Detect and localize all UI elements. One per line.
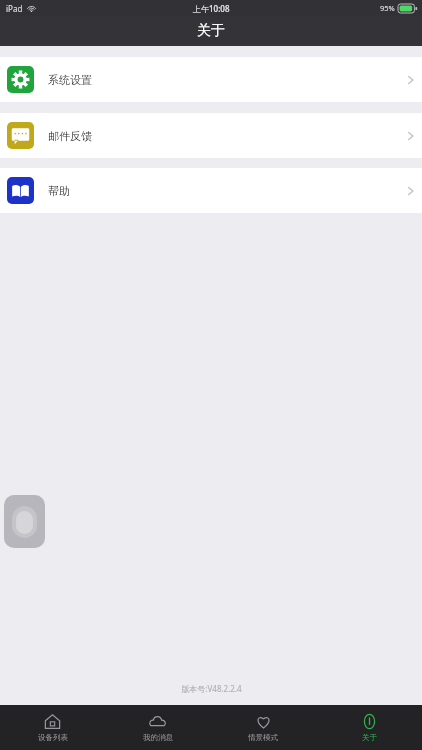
staticText: 关于 xyxy=(362,733,377,742)
button[interactable]: 邮件反馈 xyxy=(0,113,422,158)
staticText: 帮助 xyxy=(48,184,70,198)
staticText: 上午10:08 xyxy=(193,3,230,14)
staticText: 系统设置 xyxy=(48,73,92,87)
button[interactable]: Assistive touch xyxy=(4,495,45,548)
staticText: 我的消息 xyxy=(143,733,173,742)
staticText: 关于 xyxy=(197,22,225,40)
staticText: 设备列表 xyxy=(38,733,68,742)
staticText: 95% xyxy=(380,3,395,13)
staticText: 版本号:V48.2.2.4 xyxy=(181,683,242,694)
button[interactable]: 帮助 xyxy=(0,168,422,213)
staticText: 邮件反馈 xyxy=(48,129,92,143)
button[interactable]: 关于 xyxy=(316,705,422,750)
button[interactable]: 我的消息 xyxy=(105,705,210,750)
staticText: 情景模式 xyxy=(248,733,278,742)
button[interactable]: 设备列表 xyxy=(0,705,105,750)
staticText: iPad xyxy=(6,3,23,14)
button[interactable]: 系统设置 xyxy=(0,57,422,102)
button[interactable]: 情景模式 xyxy=(210,705,316,750)
